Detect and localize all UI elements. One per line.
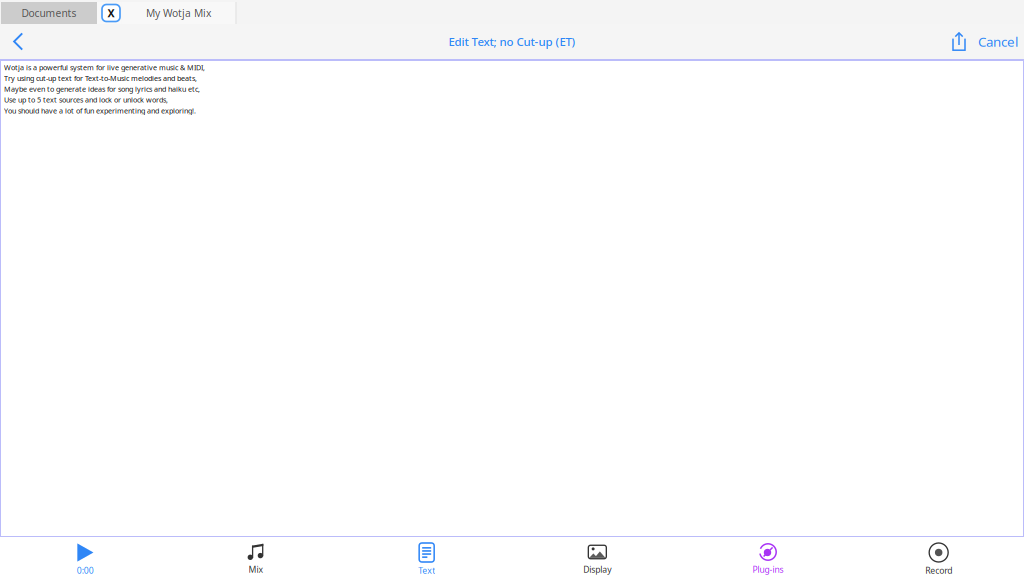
staticText: You should have a lot of fun experimenti…	[4, 106, 196, 115]
button[interactable]: Mix	[171, 537, 341, 576]
staticText: Plug-ins	[752, 563, 783, 575]
button[interactable]: Display	[512, 537, 683, 576]
button[interactable]: Cancel	[978, 24, 1024, 59]
staticText: Display	[583, 563, 611, 575]
staticText: Wotja is a powerful system for live gene…	[4, 62, 205, 72]
button[interactable]: Share	[940, 24, 978, 59]
staticText: Mix	[248, 563, 263, 575]
button[interactable]: Plug-ins	[683, 537, 853, 576]
staticText: 0:00	[77, 564, 94, 576]
button[interactable]: Record	[853, 537, 1024, 576]
staticText: Documents	[21, 6, 76, 20]
button[interactable]: My Wotja Mix	[121, 2, 235, 24]
button[interactable]: 0:00	[0, 537, 171, 576]
button[interactable]: Close document	[97, 2, 121, 24]
button[interactable]: Back	[0, 24, 35, 59]
staticText: X	[107, 6, 114, 20]
staticText: Record	[925, 564, 952, 576]
staticText: Use up to 5 text sources and lock or unl…	[4, 95, 168, 105]
staticText: Maybe even to generate ideas for song ly…	[4, 84, 200, 94]
staticText: Cancel	[978, 32, 1018, 51]
staticText: Try using cut-up text for Text-to-Music …	[4, 73, 197, 83]
button[interactable]: Text	[341, 537, 512, 576]
staticText: Text	[418, 564, 435, 576]
staticText: My Wotja Mix	[146, 6, 211, 20]
button[interactable]: Documents	[1, 2, 97, 24]
staticText: Edit Text; no Cut-up (ET)	[448, 34, 575, 49]
